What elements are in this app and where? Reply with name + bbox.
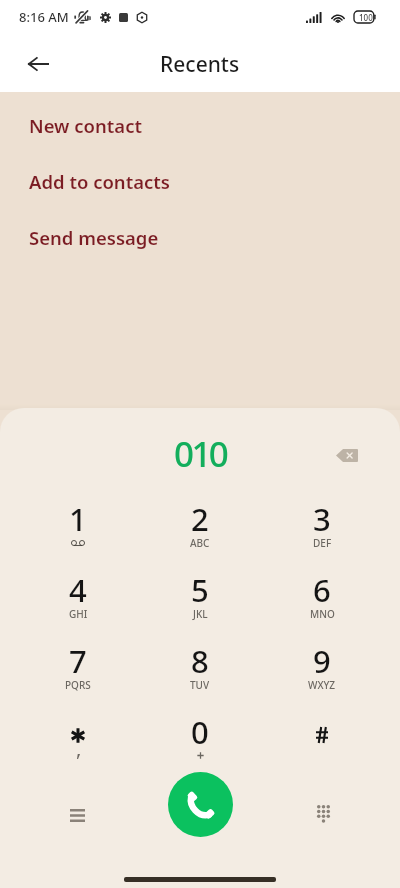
button[interactable]: 2 <box>139 497 261 568</box>
staticText: 2 <box>191 498 209 540</box>
button[interactable]: 6 <box>261 568 383 639</box>
staticText: 010 <box>174 430 227 478</box>
staticText: Add to contacts <box>29 169 170 194</box>
button[interactable]: Add to contacts <box>0 153 400 209</box>
staticText: 3 <box>313 498 331 540</box>
button[interactable]: Call <box>168 772 233 837</box>
button[interactable]: 1 <box>17 497 139 568</box>
staticText: 1 <box>69 498 87 540</box>
button[interactable]: Backspace <box>325 433 369 477</box>
button[interactable]: Send message <box>0 209 400 265</box>
staticText: Recents <box>160 50 240 79</box>
staticText: MNO <box>310 607 335 621</box>
staticText: 7 <box>69 640 87 682</box>
staticText: 8 <box>191 640 209 682</box>
staticText: TUV <box>190 678 210 692</box>
staticText: 4 <box>69 569 87 611</box>
button[interactable]: 9 <box>261 639 383 710</box>
staticText: JKL <box>193 607 208 621</box>
staticText: WXYZ <box>308 678 336 692</box>
staticText: 100 <box>359 12 373 23</box>
staticText: 0 <box>191 711 209 753</box>
button[interactable] <box>261 710 383 781</box>
button[interactable]: Dialpad <box>301 791 345 835</box>
button[interactable]: 5 <box>139 568 261 639</box>
staticText: New contact <box>29 113 142 138</box>
staticText: 5 <box>191 569 209 611</box>
staticText: 8:16 AM <box>19 8 69 26</box>
staticText: 6 <box>313 569 331 611</box>
button[interactable]: New contact <box>0 92 400 153</box>
button[interactable]: 3 <box>261 497 383 568</box>
staticText: 9 <box>313 640 331 682</box>
staticText: Send message <box>29 225 159 250</box>
button[interactable]: Call log <box>55 793 99 837</box>
button[interactable]: 8 <box>139 639 261 710</box>
button[interactable] <box>17 710 139 781</box>
button[interactable]: 0 <box>139 710 261 781</box>
staticText: PQRS <box>65 678 91 692</box>
staticText: ABC <box>190 536 210 550</box>
button[interactable]: 7 <box>17 639 139 710</box>
staticText: GHI <box>69 607 88 621</box>
button[interactable]: 4 <box>17 568 139 639</box>
button[interactable]: Back <box>16 42 60 86</box>
staticText: DEF <box>313 536 332 550</box>
